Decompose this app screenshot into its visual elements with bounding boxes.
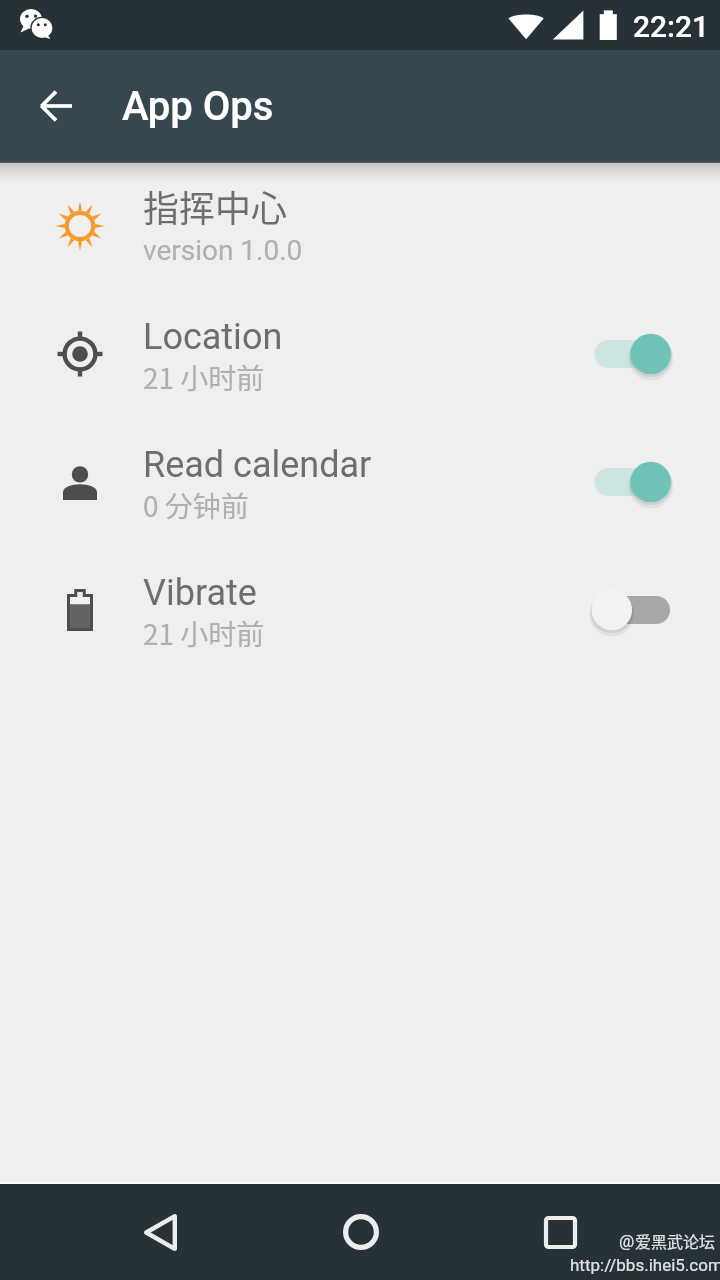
button[interactable]: Back bbox=[20, 70, 92, 142]
staticText: 22:21 bbox=[633, 9, 710, 44]
button[interactable]: Switch on bbox=[590, 328, 674, 380]
staticText: 爱黑武论坛 bbox=[635, 1229, 716, 1252]
button[interactable]: Vibrate bbox=[0, 546, 720, 674]
button[interactable]: Location bbox=[0, 290, 720, 418]
button[interactable]: 指挥中心 bbox=[0, 162, 720, 290]
button[interactable]: Read calendar bbox=[0, 418, 720, 546]
staticText: Vibrate bbox=[143, 572, 257, 614]
staticText: 21 小时前 bbox=[143, 613, 265, 654]
staticText: @ bbox=[619, 1231, 635, 1251]
staticText: App Ops bbox=[122, 83, 274, 130]
staticText: 指挥中心 bbox=[143, 180, 288, 232]
button[interactable]: Home bbox=[313, 1184, 409, 1280]
button[interactable]: Switch off bbox=[590, 584, 674, 636]
button[interactable]: Switch on bbox=[590, 456, 674, 508]
staticText: Read calendar bbox=[143, 444, 372, 486]
button[interactable]: Back bbox=[112, 1184, 208, 1280]
button[interactable]: Recents bbox=[512, 1184, 608, 1280]
staticText: Location bbox=[143, 316, 283, 358]
staticText: 0 分钟前 bbox=[143, 485, 249, 526]
staticText: version 1.0.0 bbox=[143, 234, 303, 267]
staticText: 21 小时前 bbox=[143, 357, 265, 398]
staticText: http://bbs.ihei5.com bbox=[570, 1255, 720, 1275]
